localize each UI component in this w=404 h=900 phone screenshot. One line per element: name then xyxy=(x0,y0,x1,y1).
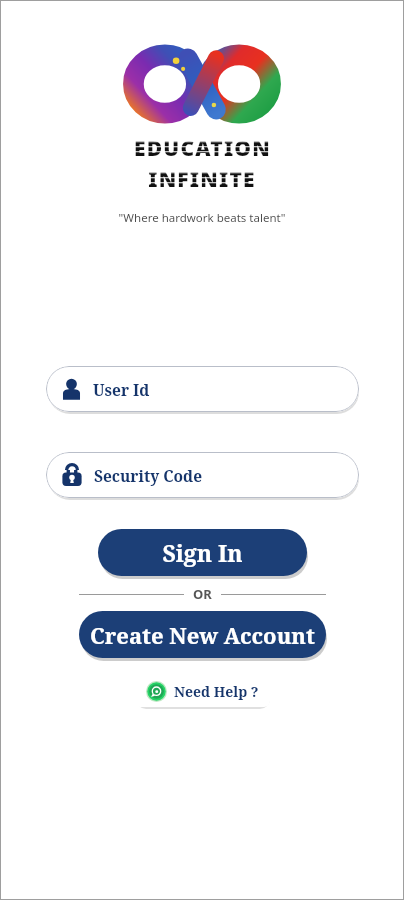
button[interactable]: Security code xyxy=(46,452,359,498)
button[interactable]: Sign In xyxy=(98,529,307,576)
staticText: INFINITE xyxy=(148,165,256,194)
button[interactable]: User xyxy=(46,366,359,412)
staticText: OR xyxy=(193,585,212,603)
other: User xyxy=(60,378,83,401)
other: Security code xyxy=(60,463,84,487)
staticText: EDUCATION xyxy=(134,134,271,163)
other: Need help on WhatsApp xyxy=(146,681,167,702)
staticText: User Id xyxy=(93,379,150,400)
staticText: Need Help ? xyxy=(174,682,259,701)
staticText: "Where hardwork beats talent" xyxy=(118,210,286,226)
button[interactable]: Create New Account xyxy=(79,611,326,658)
button[interactable]: Need help on WhatsApp xyxy=(134,675,270,707)
staticText: Sign In xyxy=(162,537,243,568)
staticText: Security Code xyxy=(94,465,203,486)
staticText: Create New Account xyxy=(90,620,315,650)
